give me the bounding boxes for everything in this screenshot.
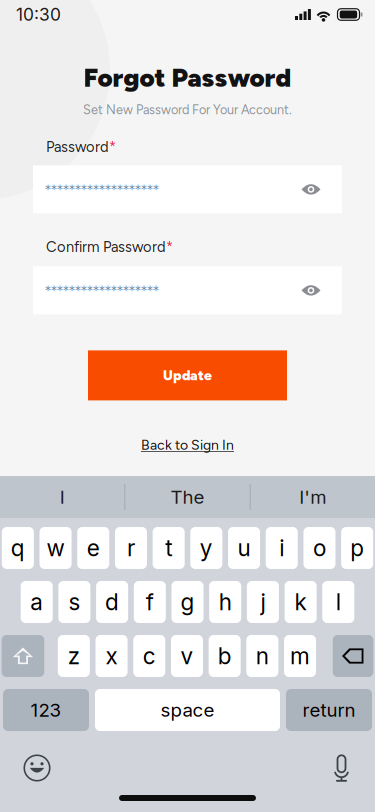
staticText: Back to Sign In — [141, 436, 234, 453]
button[interactable]: q — [2, 527, 34, 569]
button[interactable]: Shift — [2, 635, 44, 677]
button[interactable]: Back to Sign In — [141, 436, 234, 453]
button[interactable]: c — [133, 635, 165, 677]
staticText: s — [68, 588, 80, 616]
button[interactable]: return — [286, 689, 372, 731]
button[interactable]: Update — [88, 350, 287, 400]
staticText: 123 — [30, 699, 61, 721]
button[interactable]: t — [153, 527, 185, 569]
staticText: f — [146, 588, 154, 616]
button[interactable]: y — [190, 527, 222, 569]
staticText: d — [105, 588, 119, 616]
button[interactable]: o — [303, 527, 335, 569]
staticText: v — [180, 642, 193, 670]
button[interactable]: space — [95, 689, 280, 731]
button[interactable]: h — [209, 581, 241, 623]
staticText: o — [313, 534, 326, 562]
staticText: l — [336, 588, 341, 616]
staticText: w — [46, 534, 64, 562]
staticText: p — [350, 534, 364, 562]
button[interactable]: Delete — [333, 635, 373, 677]
staticText: u — [237, 534, 250, 562]
staticText: x — [106, 642, 118, 670]
button[interactable]: l — [322, 581, 354, 623]
staticText: return — [302, 699, 355, 721]
staticText: * — [109, 138, 116, 156]
button[interactable]: b — [209, 635, 241, 677]
staticText: The — [170, 486, 204, 508]
staticText: space — [160, 699, 214, 721]
staticText: I — [60, 486, 65, 508]
button[interactable]: 123 — [3, 689, 89, 731]
button[interactable]: v — [171, 635, 203, 677]
staticText: Password — [46, 138, 109, 156]
staticText: k — [295, 588, 307, 616]
button[interactable]: I — [0, 476, 124, 518]
button[interactable]: ******************* — [33, 266, 342, 314]
button[interactable]: Emoji keyboard — [23, 754, 50, 781]
staticText: I'm — [299, 486, 326, 508]
button[interactable]: I'm — [251, 476, 375, 518]
staticText: h — [219, 588, 232, 616]
staticText: c — [143, 642, 156, 670]
button[interactable]: ******************* — [33, 165, 342, 213]
staticText: Set New Password For Your Account. — [83, 102, 292, 117]
button[interactable]: z — [58, 635, 90, 677]
staticText: i — [279, 534, 284, 562]
staticText: t — [165, 534, 172, 562]
button[interactable]: e — [77, 527, 109, 569]
button[interactable]: g — [171, 581, 203, 623]
staticText: ******************* — [45, 283, 159, 297]
staticText: Update — [163, 367, 212, 384]
button[interactable]: n — [246, 635, 278, 677]
button[interactable]: s — [58, 581, 90, 623]
staticText: r — [127, 534, 135, 562]
staticText: m — [290, 642, 310, 670]
button[interactable]: p — [341, 527, 373, 569]
staticText: Forgot Password — [83, 62, 291, 93]
staticText: n — [256, 642, 269, 670]
staticText: q — [11, 534, 25, 562]
button[interactable]: d — [96, 581, 128, 623]
button[interactable]: j — [247, 581, 279, 623]
button[interactable]: m — [284, 635, 316, 677]
button[interactable]: The — [125, 476, 250, 518]
staticText: ******************* — [45, 182, 159, 196]
button[interactable]: w — [39, 527, 71, 569]
button[interactable]: k — [285, 581, 317, 623]
button[interactable]: Dictation — [333, 754, 350, 782]
button[interactable]: x — [96, 635, 128, 677]
staticText: a — [30, 588, 43, 616]
staticText: 10:30 — [16, 4, 61, 25]
staticText: z — [68, 642, 80, 670]
staticText: e — [87, 534, 100, 562]
button[interactable]: i — [266, 527, 298, 569]
button[interactable]: u — [228, 527, 260, 569]
button[interactable]: f — [134, 581, 166, 623]
staticText: Confirm Password — [46, 238, 166, 256]
staticText: y — [200, 534, 213, 562]
staticText: g — [180, 588, 194, 616]
staticText: b — [218, 642, 232, 670]
staticText: j — [260, 588, 265, 616]
button[interactable]: a — [21, 581, 53, 623]
staticText: * — [166, 238, 173, 256]
button[interactable]: r — [115, 527, 147, 569]
